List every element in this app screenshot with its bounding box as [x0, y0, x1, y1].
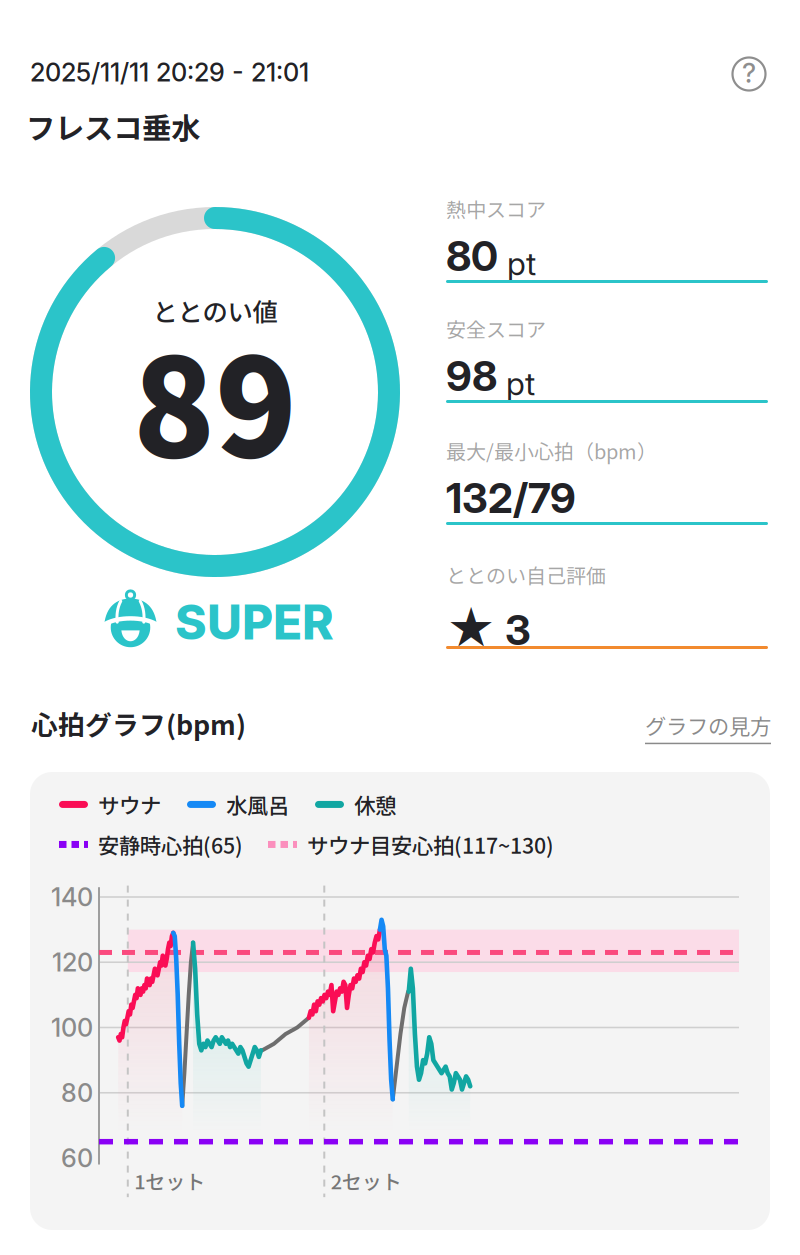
staticText: ★ [446, 600, 496, 658]
staticText: 水風呂 [226, 789, 289, 820]
staticText: 心拍グラフ(bpm) [31, 704, 246, 743]
staticText: 132/79 [446, 473, 576, 523]
staticText: ? [742, 57, 756, 89]
staticText: 80 [446, 231, 498, 281]
staticText: 140 [51, 882, 93, 912]
staticText: 100 [51, 1012, 93, 1043]
staticText: 休憩 [354, 789, 396, 820]
staticText: 最大/最小心拍（bpm） [446, 436, 657, 465]
staticText: ととのい値 [152, 292, 277, 329]
staticText: pt [506, 364, 535, 403]
staticText: 熱中スコア [446, 194, 546, 223]
staticText: 120 [52, 947, 93, 978]
staticText: フレスコ垂水 [26, 105, 200, 147]
staticText: 安全スコア [446, 314, 546, 343]
button[interactable]: ヘルプ [726, 51, 772, 97]
staticText: SUPER [175, 593, 334, 651]
staticText: 2セット [331, 1166, 402, 1195]
staticText: 3 [505, 605, 531, 655]
staticText: pt [507, 244, 536, 283]
staticText: 安静時心拍(65) [98, 829, 243, 860]
staticText: 60 [61, 1143, 93, 1173]
staticText: ととのい自己評価 [446, 560, 606, 589]
staticText: サウナ [98, 789, 161, 820]
staticText: 1セット [134, 1166, 205, 1195]
staticText: 89 [133, 301, 297, 496]
button[interactable]: グラフの見方 [645, 711, 771, 743]
staticText: 80 [61, 1077, 93, 1108]
staticText: 2025/11/11 20:29 - 21:01 [30, 57, 309, 88]
staticText: グラフの見方 [645, 710, 771, 741]
staticText: 98 [446, 351, 497, 401]
staticText: サウナ目安心拍(117~130) [307, 829, 554, 860]
